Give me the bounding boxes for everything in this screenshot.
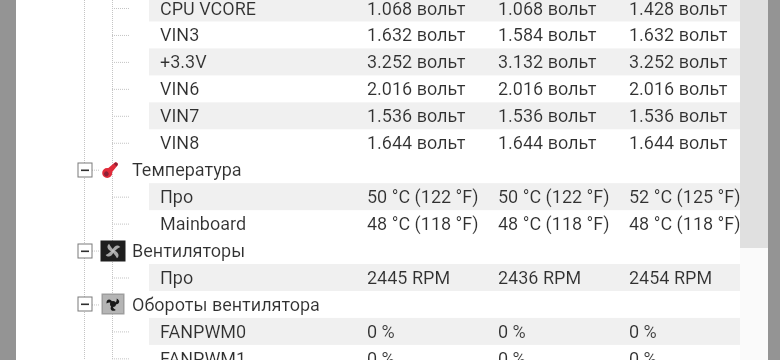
- staticText: 0 %: [367, 348, 395, 360]
- button[interactable]: Обороты вентилятора: [100, 292, 126, 316]
- button[interactable]: Collapse Обороты вентилятора: [78, 297, 92, 311]
- staticText: 48 °C (118 °F): [367, 213, 479, 234]
- button[interactable]: VIN6: [160, 78, 200, 99]
- staticText: 0 %: [498, 348, 526, 360]
- staticText: 1.632 вольт: [367, 24, 466, 45]
- staticText: 50 °C (122 °F): [367, 186, 479, 207]
- staticText: 50 °C (122 °F): [498, 186, 610, 207]
- button[interactable]: VIN3: [160, 24, 200, 45]
- button[interactable]: VIN7: [160, 105, 200, 126]
- staticText: 1.644 вольт: [498, 132, 597, 153]
- staticText: 2445 RPM: [367, 267, 451, 288]
- staticText: 1.068 вольт: [498, 0, 597, 19]
- staticText: 48 °C (118 °F): [629, 213, 741, 234]
- button[interactable]: Вентиляторы: [132, 240, 246, 261]
- staticText: 3.252 вольт: [629, 51, 728, 72]
- staticText: 1.644 вольт: [629, 132, 728, 153]
- staticText: 1.536 вольт: [629, 105, 728, 126]
- button[interactable]: Про: [160, 267, 194, 288]
- staticText: 0 %: [629, 348, 657, 360]
- button[interactable]: FANPWM1: [160, 348, 247, 360]
- staticText: 2436 RPM: [498, 267, 582, 288]
- staticText: 0 %: [629, 321, 657, 342]
- button[interactable]: Вентиляторы: [100, 239, 126, 263]
- button[interactable]: Температура: [100, 158, 126, 182]
- button[interactable]: +3.3V: [160, 51, 207, 72]
- staticText: 2.016 вольт: [629, 78, 728, 99]
- staticText: 1.068 вольт: [367, 0, 466, 19]
- staticText: 1.536 вольт: [367, 105, 466, 126]
- button[interactable]: Collapse Вентиляторы: [78, 244, 92, 258]
- staticText: 1.644 вольт: [367, 132, 466, 153]
- staticText: 1.632 вольт: [629, 24, 728, 45]
- staticText: 48 °C (118 °F): [498, 213, 610, 234]
- button[interactable]: Collapse Температура: [78, 163, 92, 177]
- staticText: 2454 RPM: [629, 267, 713, 288]
- button[interactable]: FANPWM0: [160, 321, 247, 342]
- staticText: 52 °C (125 °F): [629, 186, 741, 207]
- button[interactable]: Обороты вентилятора: [132, 294, 320, 315]
- staticText: 2.016 вольт: [367, 78, 466, 99]
- staticText: 1.428 вольт: [629, 0, 728, 19]
- button[interactable]: Про: [160, 186, 194, 207]
- button[interactable]: Mainboard: [160, 213, 247, 234]
- staticText: 2.016 вольт: [498, 78, 597, 99]
- button[interactable]: VIN8: [160, 132, 200, 153]
- button[interactable]: Температура: [132, 159, 242, 180]
- staticText: 0 %: [367, 321, 395, 342]
- staticText: 1.584 вольт: [498, 24, 597, 45]
- button[interactable]: CPU VCORE: [160, 0, 256, 19]
- staticText: 0 %: [498, 321, 526, 342]
- staticText: 3.252 вольт: [367, 51, 466, 72]
- staticText: 1.536 вольт: [498, 105, 597, 126]
- staticText: 3.132 вольт: [498, 51, 597, 72]
